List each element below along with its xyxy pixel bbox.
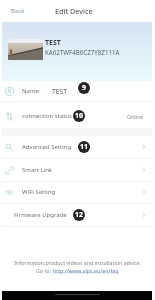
button[interactable]: WiFi Setting <box>2 181 152 203</box>
staticText: Name: <box>22 87 41 95</box>
staticText: TEST <box>45 38 61 48</box>
staticText: KA62TWF4B6CZ7Y8Z111A <box>45 48 120 56</box>
button[interactable]: Smart Link <box>2 159 152 181</box>
button[interactable]: Firmware Upgrade <box>2 204 152 226</box>
staticText: Smart Link <box>22 166 53 174</box>
staticText: Firmware Upgrade <box>14 211 67 219</box>
staticText: 12 <box>75 210 84 220</box>
staticText: http://www.alps.eu/en/faq <box>53 267 119 274</box>
other: Open <box>141 189 147 195</box>
staticText: Back <box>11 7 25 15</box>
button[interactable]: Back <box>2 2 35 20</box>
staticText: connection status <box>22 112 72 120</box>
staticText: Information,product videos and installat… <box>14 259 141 266</box>
staticText: 10 <box>75 111 84 121</box>
button[interactable]: Advanced Setting <box>2 136 152 158</box>
staticText: 9 <box>82 83 87 93</box>
button[interactable]: connection status <box>2 104 152 128</box>
other: Open <box>141 212 147 218</box>
staticText: 11 <box>80 142 89 152</box>
staticText: Online <box>127 113 144 120</box>
staticText: WiFi Setting <box>22 188 56 196</box>
staticText: Go to: <box>36 267 53 274</box>
button[interactable]: Go to: <box>36 267 119 274</box>
staticText: Edit Device <box>55 6 93 16</box>
staticText: TEST <box>52 87 68 96</box>
button[interactable]: Name: <box>2 81 152 101</box>
other: Open <box>141 167 147 173</box>
staticText: Advanced Setting <box>22 143 72 151</box>
other: Open <box>141 144 147 150</box>
